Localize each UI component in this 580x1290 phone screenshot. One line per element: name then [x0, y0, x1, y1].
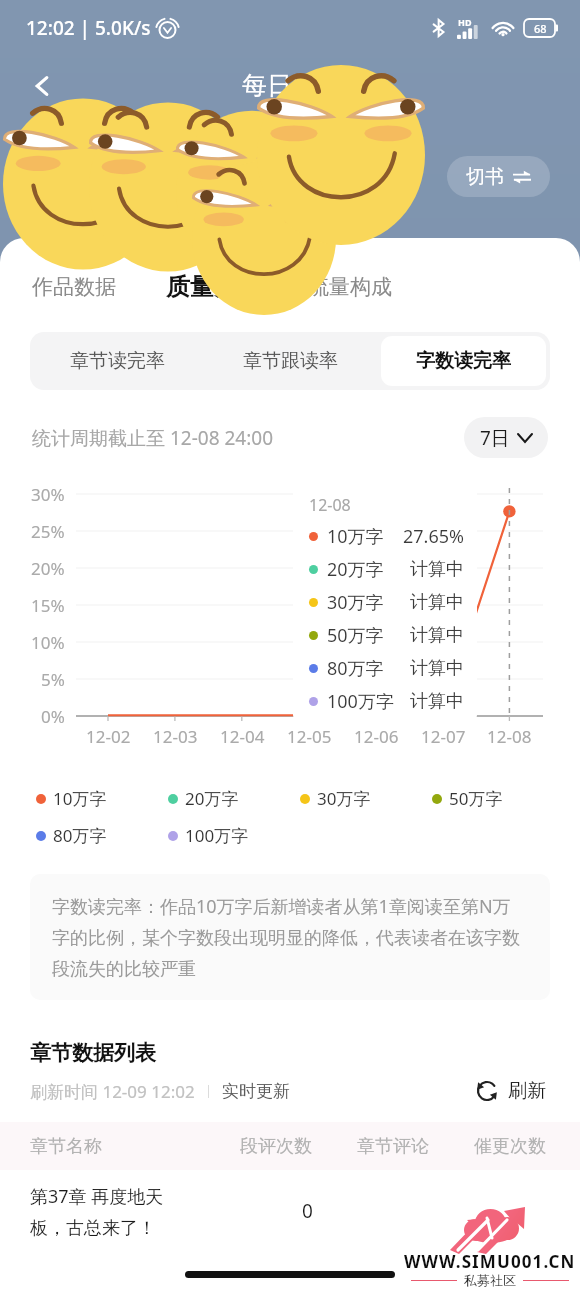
staticText: 27.65% [403, 524, 464, 549]
button[interactable]: 刷新 [472, 1075, 550, 1107]
staticText: 12:02 | 5.0K/s [26, 15, 151, 41]
staticText: 10万字 [327, 524, 384, 549]
button[interactable]: 质量分析 [166, 272, 262, 302]
staticText: 统计周期截止至 12-08 24:00 [32, 425, 274, 451]
staticText: 刷新时间 12-09 12:02 [30, 1080, 195, 1103]
staticText: 章节数据列表 [30, 1040, 156, 1066]
staticText: 第37章 再度地天板，古总来了！ [30, 1184, 180, 1239]
staticText: 100万字 [185, 824, 249, 847]
staticText: 12-04 [220, 725, 265, 748]
button[interactable]: 字数读完率 [381, 336, 546, 386]
staticText: 12-08 [487, 725, 532, 748]
staticText: 章节名称 [30, 1135, 102, 1158]
staticText: 20万字 [327, 557, 384, 582]
staticText: 切书 [466, 165, 504, 189]
staticText: 68 [534, 21, 547, 36]
staticText: 20% [31, 557, 65, 580]
staticText: 12-05 [287, 725, 332, 748]
staticText: 0 [302, 1198, 313, 1224]
staticText: 50万字 [327, 623, 384, 648]
staticText: 20万字 [185, 787, 239, 810]
staticText: 25% [31, 520, 65, 543]
staticText: 计算中 [410, 624, 464, 647]
button[interactable]: 作品数据 [32, 274, 116, 300]
staticText: 字数读完率 [416, 349, 511, 373]
button[interactable]: Back [14, 58, 70, 114]
staticText: 100万字 [327, 689, 394, 714]
staticText: 私募社区 [464, 1272, 516, 1288]
button[interactable]: 流量构成 [308, 274, 392, 300]
staticText: 30万字 [327, 590, 384, 615]
staticText: 80万字 [53, 824, 107, 847]
staticText: 每日数据 [242, 70, 342, 101]
button[interactable]: 切书 [447, 156, 550, 197]
staticText: 字数读完率：作品10万字后新增读者从第1章阅读至第N万字的比例，某个字数段出现明… [52, 894, 528, 980]
staticText: 计算中 [410, 657, 464, 680]
staticText: HD [458, 16, 472, 28]
staticText: 15% [31, 594, 65, 617]
staticText: 7日 [480, 425, 510, 451]
staticText: 计算中 [410, 591, 464, 614]
staticText: 催更次数 [474, 1135, 546, 1158]
staticText: 0% [41, 705, 65, 728]
staticText: 12-03 [153, 725, 198, 748]
staticText: 10% [31, 631, 65, 654]
button[interactable]: 第37章 再度地天板，古总来了！ [0, 1170, 580, 1262]
staticText: 作品数据 [32, 274, 116, 300]
staticText: 章节评论 [357, 1135, 429, 1158]
staticText: 80万字 [327, 656, 384, 681]
staticText: 50万字 [449, 787, 503, 810]
staticText: 质量分析 [166, 272, 262, 302]
button[interactable]: 7日 [464, 417, 548, 458]
staticText: 5% [41, 668, 65, 691]
staticText: 章节读完率 [70, 349, 165, 373]
staticText: WWW.SIMU001.CN [404, 1250, 576, 1273]
staticText: 段评次数 [240, 1135, 312, 1158]
staticText: 12-02 [86, 725, 131, 748]
staticText: 30% [31, 483, 65, 506]
button[interactable]: 章节跟读率 [204, 332, 377, 390]
staticText: 实时更新 [222, 1081, 290, 1102]
staticText: 章节跟读率 [243, 349, 338, 373]
staticText: 10万字 [53, 787, 107, 810]
staticText: 12-06 [354, 725, 399, 748]
staticText: 30万字 [317, 787, 371, 810]
staticText: 12-07 [421, 725, 466, 748]
staticText: 12-08 [309, 494, 351, 516]
staticText: 计算中 [410, 558, 464, 581]
button[interactable]: 章节读完率 [30, 332, 204, 390]
staticText: 刷新 [508, 1079, 546, 1103]
staticText: 计算中 [410, 690, 464, 713]
staticText: 流量构成 [308, 274, 392, 300]
